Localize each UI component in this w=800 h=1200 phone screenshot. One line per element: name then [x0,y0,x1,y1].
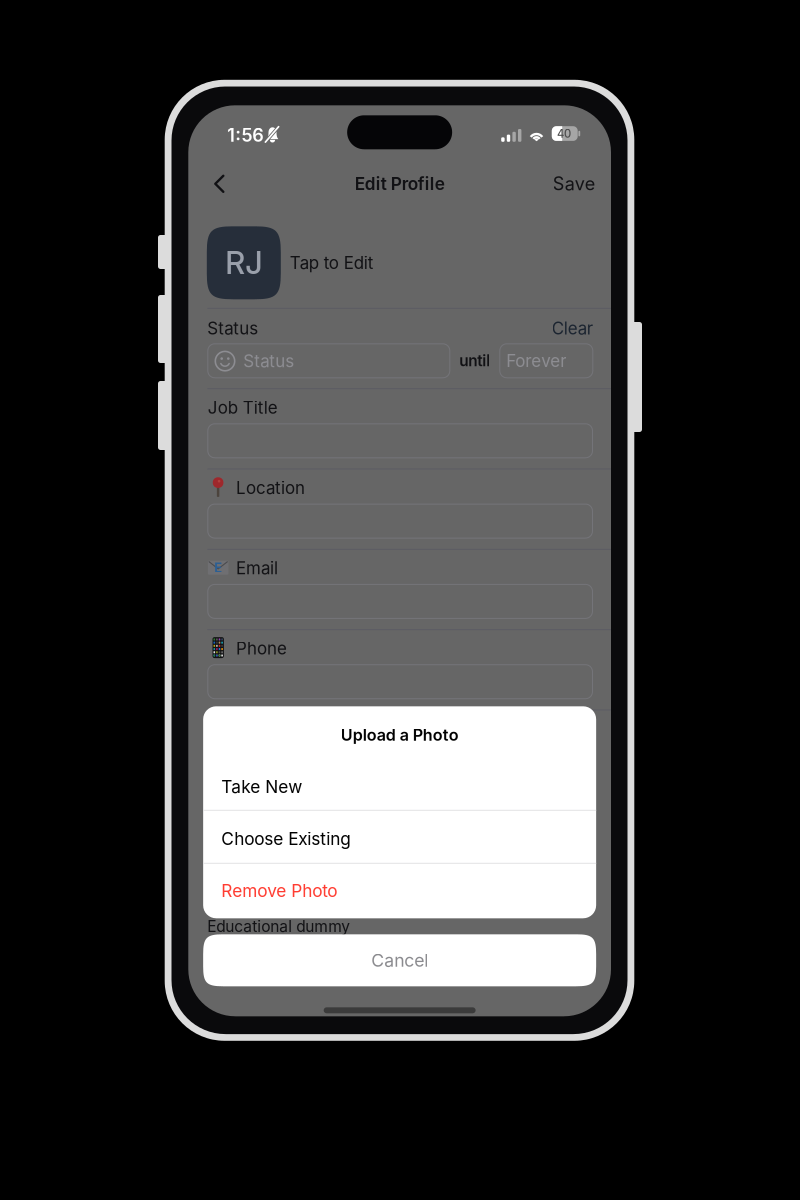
staticText: Tap to Edit [290,253,374,273]
staticText: Email [236,558,278,578]
staticText: Edit Profile [355,173,445,194]
staticText: Forever [506,351,566,371]
staticText: Upload a Photo [341,725,459,745]
button[interactable]: Choose Existing [203,813,596,865]
staticText: Save [553,173,595,195]
staticText: 1:56 [227,124,264,146]
button[interactable]: Back [197,162,241,206]
button[interactable]: Take New [203,761,596,813]
staticText: Cancel [371,950,428,971]
staticText: Clear [552,318,593,338]
button[interactable]: Cancel [203,934,596,986]
button[interactable]: Clear [515,313,593,343]
staticText: until [459,351,490,370]
button[interactable]: Remove Photo [203,865,596,917]
button[interactable]: Save [517,162,595,206]
staticText: E [214,560,222,575]
staticText: Phone [236,638,287,659]
staticText: 40 [557,127,571,140]
staticText: Remove Photo [221,880,337,901]
staticText: Location [236,478,305,498]
staticText: Educational dummy [207,917,350,936]
staticText: Status [243,351,294,371]
button[interactable]: RJ [207,226,470,299]
staticText: Choose Existing [221,828,351,849]
staticText: Status [207,318,258,338]
staticText: Job Title [208,397,278,418]
staticText: Take New [221,776,302,797]
staticText: RJ [225,244,262,281]
